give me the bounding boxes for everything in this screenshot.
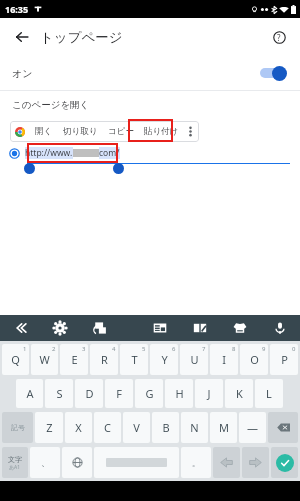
- button[interactable]: C: [94, 412, 121, 443]
- button[interactable]: P: [270, 344, 298, 375]
- button[interactable]: Clipboard: [80, 315, 120, 341]
- staticText: S: [56, 386, 63, 401]
- staticText: 2: [52, 345, 56, 353]
- button[interactable]: Y: [150, 344, 178, 375]
- button[interactable]: I: [210, 344, 238, 375]
- button[interactable]: 。: [181, 447, 211, 478]
- button[interactable]: L: [255, 379, 283, 408]
- staticText: 8: [232, 345, 236, 353]
- button[interactable]: Language: [62, 447, 92, 478]
- button[interactable]: G: [135, 379, 163, 408]
- staticText: D: [85, 386, 94, 401]
- button[interactable]: Back: [6, 21, 38, 53]
- button[interactable]: Q: [2, 344, 29, 375]
- button[interactable]: K: [225, 379, 253, 408]
- button[interactable]: Theme: [220, 315, 260, 341]
- button[interactable]: 開く: [30, 121, 58, 142]
- staticText: Q: [11, 352, 20, 367]
- button[interactable]: N: [181, 412, 208, 443]
- staticText: com/: [99, 147, 120, 159]
- staticText: 5: [142, 345, 146, 353]
- staticText: 4: [112, 345, 116, 353]
- staticText: あA1: [9, 464, 21, 471]
- button[interactable]: R: [90, 344, 118, 375]
- staticText: http://www.: [25, 147, 73, 159]
- staticText: U: [190, 352, 199, 367]
- button[interactable]: Collapse: [0, 315, 40, 341]
- button[interactable]: Voice input: [260, 315, 300, 341]
- button[interactable]: Right: [242, 447, 269, 478]
- staticText: L: [266, 386, 272, 401]
- button[interactable]: T: [120, 344, 148, 375]
- staticText: 貼り付け: [144, 126, 179, 137]
- button[interactable]: 貼り付け: [139, 121, 184, 142]
- staticText: I: [222, 352, 226, 367]
- staticText: P: [281, 352, 288, 367]
- button[interactable]: F: [105, 379, 133, 408]
- staticText: トップページ: [40, 29, 123, 46]
- button[interactable]: V: [123, 412, 150, 443]
- staticText: R: [101, 352, 108, 367]
- button[interactable]: Input mode: [2, 447, 28, 478]
- button[interactable]: コピー: [103, 121, 139, 142]
- button[interactable]: オン: [0, 56, 300, 90]
- staticText: O: [250, 352, 259, 367]
- button[interactable]: Help: [264, 22, 294, 52]
- button[interactable]: J: [195, 379, 223, 408]
- staticText: C: [104, 420, 111, 435]
- staticText: Y: [161, 352, 168, 367]
- staticText: K: [236, 386, 243, 401]
- button[interactable]: Z: [35, 412, 63, 443]
- staticText: 切り取り: [63, 126, 98, 137]
- staticText: B: [162, 420, 170, 435]
- staticText: J: [207, 386, 211, 401]
- button[interactable]: E: [60, 344, 88, 375]
- button[interactable]: Symbols: [2, 412, 33, 443]
- button[interactable]: More options: [184, 121, 197, 142]
- button[interactable]: A: [16, 379, 43, 408]
- staticText: 7: [202, 345, 206, 353]
- staticText: M: [219, 420, 229, 435]
- button[interactable]: W: [31, 344, 58, 375]
- staticText: H: [175, 386, 184, 401]
- button[interactable]: Selected: [8, 147, 21, 160]
- staticText: 、: [41, 457, 50, 468]
- button[interactable]: Edit: [180, 315, 220, 341]
- staticText: W: [39, 352, 50, 367]
- staticText: X: [75, 420, 82, 435]
- staticText: 9: [262, 345, 266, 353]
- staticText: G: [145, 386, 154, 401]
- staticText: F: [116, 386, 122, 401]
- staticText: 16:35: [5, 3, 29, 15]
- button[interactable]: Layout: [140, 315, 180, 341]
- staticText: このページを開く: [12, 99, 90, 111]
- button[interactable]: U: [180, 344, 208, 375]
- button[interactable]: Space: [94, 447, 179, 478]
- staticText: 文字: [8, 455, 22, 464]
- staticText: —: [247, 420, 258, 435]
- staticText: オン: [12, 67, 33, 80]
- staticText: 3: [82, 345, 86, 353]
- button[interactable]: D: [75, 379, 103, 408]
- button[interactable]: Settings: [40, 315, 80, 341]
- button[interactable]: M: [210, 412, 237, 443]
- button[interactable]: Backspace: [268, 412, 298, 443]
- staticText: A: [26, 386, 34, 401]
- button[interactable]: Enter: [271, 447, 298, 478]
- staticText: コピー: [108, 126, 134, 137]
- staticText: ?: [277, 32, 281, 43]
- staticText: 6: [172, 345, 176, 353]
- button[interactable]: Left: [213, 447, 240, 478]
- button[interactable]: 、: [30, 447, 60, 478]
- staticText: 記号: [11, 423, 25, 432]
- button[interactable]: H: [165, 379, 193, 408]
- staticText: N: [190, 420, 199, 435]
- button[interactable]: B: [152, 412, 179, 443]
- staticText: 1: [23, 345, 27, 353]
- button[interactable]: O: [240, 344, 268, 375]
- button[interactable]: X: [65, 412, 92, 443]
- button[interactable]: 切り取り: [58, 121, 103, 142]
- button[interactable]: S: [45, 379, 73, 408]
- staticText: 0: [292, 345, 296, 353]
- button[interactable]: —: [239, 412, 266, 443]
